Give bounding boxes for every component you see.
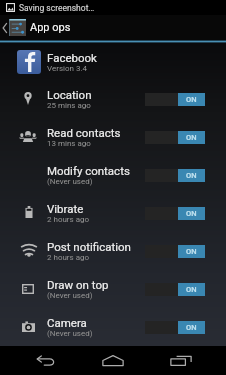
staticText: Read contacts: [47, 126, 121, 139]
button[interactable]: Toggle: [145, 169, 205, 182]
button[interactable]: Read contacts: [0, 118, 226, 156]
staticText: Saving screenshot…: [19, 3, 95, 13]
staticText: ON: [186, 133, 197, 142]
button[interactable]: Draw on top: [0, 270, 226, 308]
button[interactable]: Toggle: [145, 207, 205, 220]
staticText: Modify contacts: [47, 164, 130, 177]
button[interactable]: Toggle: [145, 93, 205, 106]
staticText: ON: [186, 95, 197, 104]
button[interactable]: Toggle: [145, 131, 205, 144]
staticText: ON: [186, 247, 197, 256]
staticText: 25 mins ago: [47, 101, 91, 110]
staticText: Version 3.4: [47, 64, 88, 73]
button[interactable]: Location: [0, 80, 226, 118]
staticText: 2 hours ago: [47, 253, 90, 262]
staticText: Draw on top: [47, 278, 109, 291]
button[interactable]: Facebook: [0, 43, 226, 80]
button[interactable]: Toggle: [145, 283, 205, 296]
button[interactable]: Home: [90, 346, 136, 375]
staticText: Location: [47, 88, 92, 101]
staticText: Facebook: [47, 51, 97, 64]
staticText: 2 hours ago: [47, 215, 90, 224]
staticText: ON: [186, 285, 197, 294]
staticText: 13 mins ago: [47, 139, 91, 148]
button[interactable]: Post notification: [0, 232, 226, 270]
staticText: Camera: [47, 316, 87, 329]
staticText: (Never used): [47, 177, 93, 186]
staticText: Post notification: [47, 240, 131, 253]
staticText: App ops: [30, 21, 71, 34]
other: Back: [2, 23, 7, 33]
button[interactable]: Recent apps: [158, 346, 204, 375]
button[interactable]: Camera: [0, 308, 226, 346]
button[interactable]: Toggle: [145, 245, 205, 258]
button[interactable]: Back: [22, 346, 68, 375]
staticText: ON: [186, 209, 197, 218]
button[interactable]: Toggle: [145, 321, 205, 334]
staticText: ON: [186, 323, 197, 332]
button[interactable]: Back: [0, 15, 26, 40]
button[interactable]: Modify contacts: [0, 156, 226, 194]
staticText: (Never used): [47, 329, 93, 338]
button[interactable]: Vibrate: [0, 194, 226, 232]
staticText: (Never used): [47, 291, 93, 300]
staticText: Vibrate: [47, 202, 84, 215]
staticText: ON: [186, 171, 197, 180]
